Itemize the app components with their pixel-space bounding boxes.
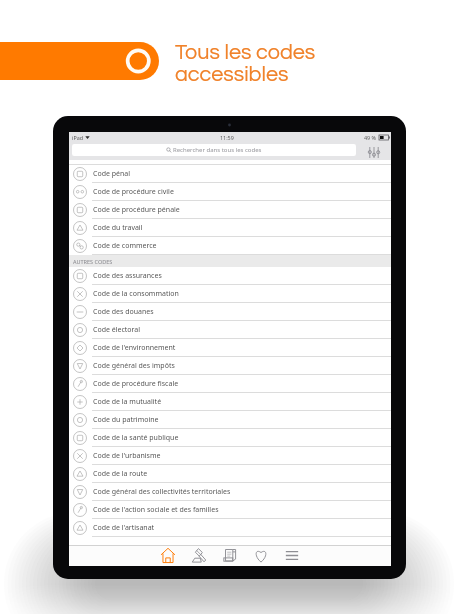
- button[interactable]: Code des douanes: [69, 303, 391, 321]
- button[interactable]: Code de commerce: [69, 237, 391, 255]
- staticText: Code de la route: [93, 469, 148, 479]
- button[interactable]: Code de la mutualité: [69, 393, 391, 411]
- button[interactable]: Rechercher dans tous les codes: [72, 144, 356, 156]
- staticText: accessibles: [175, 63, 289, 85]
- staticText: Code de la mutualité: [93, 397, 162, 407]
- staticText: Code de la santé publique: [93, 433, 179, 443]
- button[interactable]: Code de la consommation: [69, 285, 391, 303]
- button[interactable]: Code général des impôts: [69, 357, 391, 375]
- staticText: Code de procédure fiscale: [93, 379, 179, 389]
- staticText: Code des douanes: [93, 307, 154, 317]
- staticText: Code du patrimoine: [93, 415, 159, 425]
- staticText: Code des assurances: [93, 271, 162, 281]
- button[interactable]: Menu: [276, 545, 307, 566]
- button[interactable]: Code de procédure fiscale: [69, 375, 391, 393]
- staticText: Code du travail: [93, 223, 143, 233]
- button[interactable]: Code de l'environnement: [69, 339, 391, 357]
- button[interactable]: Code de procédure pénale: [69, 201, 391, 219]
- button[interactable]: Code de la route: [69, 465, 391, 483]
- staticText: Code de l'urbanisme: [93, 451, 161, 461]
- staticText: Code électoral: [93, 325, 141, 335]
- staticText: AUTRES CODES: [73, 258, 113, 265]
- button[interactable]: Code général des collectivités territori…: [69, 483, 391, 501]
- button[interactable]: Code de procédure civile: [69, 183, 391, 201]
- button[interactable]: Code du patrimoine: [69, 411, 391, 429]
- staticText: 49 %: [364, 134, 377, 141]
- staticText: Code de l'action sociale et des familles: [93, 505, 219, 515]
- staticText: Code général des impôts: [93, 361, 175, 371]
- staticText: 11:59: [220, 134, 234, 141]
- button[interactable]: Code de l'urbanisme: [69, 447, 391, 465]
- button[interactable]: Code des assurances: [69, 267, 391, 285]
- button[interactable]: Code de la santé publique: [69, 429, 391, 447]
- staticText: Code de commerce: [93, 241, 157, 251]
- staticText: Tous les codes: [175, 41, 316, 63]
- staticText: Code pénal: [93, 169, 131, 179]
- staticText: Code de la consommation: [93, 289, 179, 299]
- button[interactable]: Accueil: [152, 545, 183, 566]
- staticText: Code de l'environnement: [93, 343, 176, 353]
- button[interactable]: Textes: [214, 545, 245, 566]
- button[interactable]: Filtres: [356, 143, 391, 159]
- staticText: Rechercher dans tous les codes: [173, 146, 262, 154]
- button[interactable]: Code pénal: [69, 165, 391, 183]
- button[interactable]: Code de l'action sociale et des familles: [69, 501, 391, 519]
- staticText: Code de procédure pénale: [93, 205, 180, 215]
- staticText: Code de l'artisanat: [93, 523, 155, 533]
- staticText: iPad: [72, 134, 83, 141]
- button[interactable]: Code de l'artisanat: [69, 519, 391, 537]
- button[interactable]: Code du travail: [69, 219, 391, 237]
- button[interactable]: Code électoral: [69, 321, 391, 339]
- button[interactable]: Favoris: [245, 545, 276, 566]
- button[interactable]: Jurisprudence: [183, 545, 214, 566]
- staticText: Code général des collectivités territori…: [93, 487, 231, 497]
- staticText: Code de procédure civile: [93, 187, 174, 197]
